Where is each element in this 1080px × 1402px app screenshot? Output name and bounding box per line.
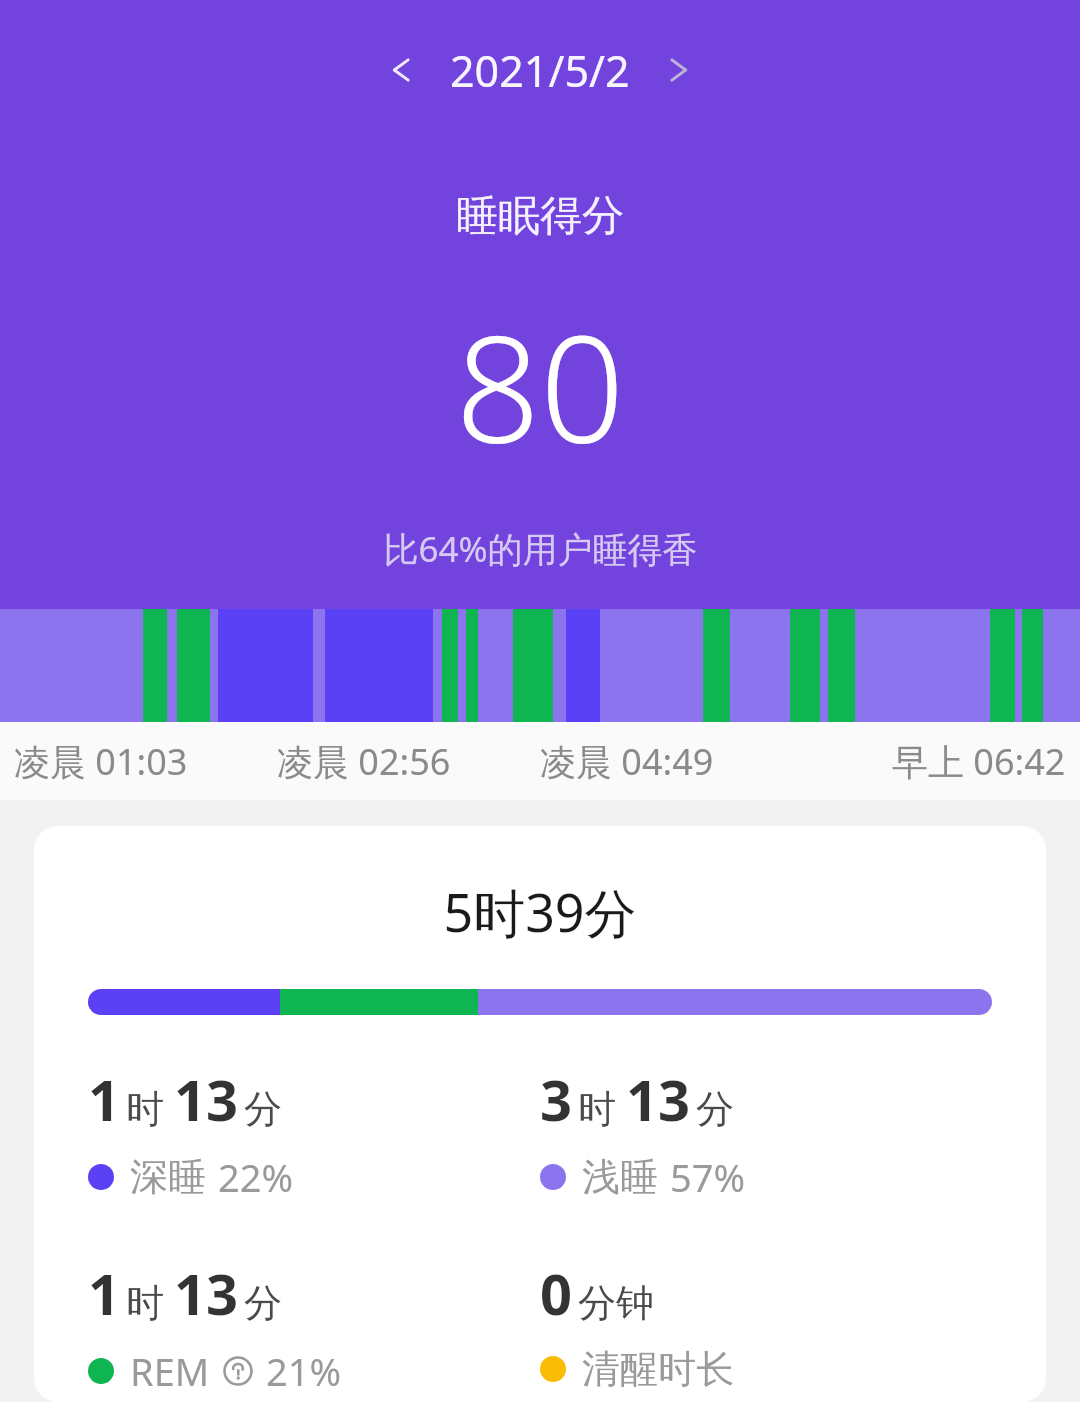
staticText: 凌晨 01:03 [14, 737, 188, 786]
staticText: 分 [244, 1279, 282, 1327]
staticText: REM [130, 1345, 210, 1397]
staticText: 凌晨 04:49 [540, 737, 714, 786]
staticText: 时 [126, 1085, 164, 1133]
staticText: 22% [218, 1151, 294, 1203]
staticText: 时 [126, 1279, 164, 1327]
staticText: 分 [244, 1085, 282, 1133]
staticText: 13 [626, 1061, 691, 1137]
button[interactable]: What is REM [222, 1355, 254, 1387]
staticText: 13 [174, 1061, 239, 1137]
staticText: 0 [540, 1255, 573, 1331]
staticText: 80 [455, 285, 625, 487]
staticText: 清醒时长 [582, 1345, 734, 1393]
staticText: 57% [670, 1151, 746, 1203]
staticText: 时 [578, 1085, 616, 1133]
button[interactable]: 5时39分 [34, 826, 1046, 1402]
button[interactable]: 1 [88, 1061, 294, 1203]
button[interactable]: 1 [88, 1255, 342, 1397]
button[interactable]: 3 [540, 1061, 746, 1203]
staticText: 3 [540, 1061, 573, 1137]
staticText: 睡眠得分 [456, 190, 624, 243]
staticText: 凌晨 02:56 [277, 737, 451, 786]
staticText: 1 [88, 1061, 121, 1137]
staticText: 21% [266, 1345, 342, 1397]
staticText: 1 [88, 1255, 121, 1331]
staticText: 比64%的用户睡得香 [383, 525, 698, 573]
staticText: 早上 06:42 [892, 737, 1066, 786]
staticText: 分钟 [578, 1279, 654, 1327]
staticText: 分 [696, 1085, 734, 1133]
button[interactable]: 0 [540, 1255, 734, 1393]
staticText: 5时39分 [34, 876, 1046, 947]
staticText: 浅睡 [582, 1153, 658, 1201]
staticText: 深睡 [130, 1153, 206, 1201]
button[interactable]: Previous day [368, 38, 432, 102]
staticText: 2021/5/2 [450, 41, 630, 100]
button[interactable]: Next day [648, 38, 712, 102]
staticText: 13 [174, 1255, 239, 1331]
